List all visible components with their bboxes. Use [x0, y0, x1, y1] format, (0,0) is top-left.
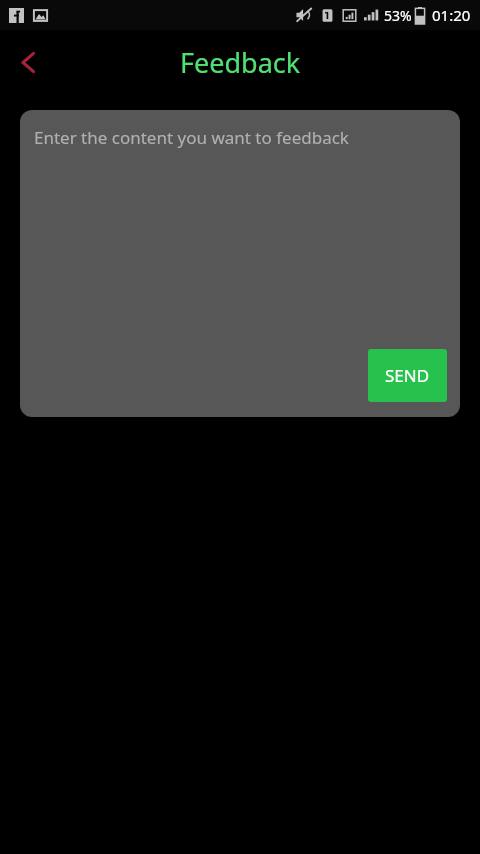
staticText: Feedback — [180, 44, 301, 81]
staticText: 53% — [384, 6, 412, 25]
button[interactable]: Back — [4, 38, 52, 86]
button[interactable]: SEND — [368, 349, 447, 402]
button[interactable]: Enter the content you want to feedback — [20, 110, 460, 417]
staticText: 01:20 — [432, 5, 471, 25]
staticText: Enter the content you want to feedback — [34, 126, 349, 149]
staticText: SEND — [385, 364, 430, 387]
